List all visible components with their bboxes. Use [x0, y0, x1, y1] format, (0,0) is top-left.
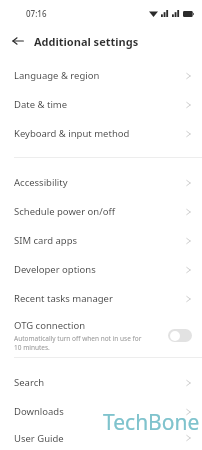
- button[interactable]: OTG connection: [0, 313, 202, 357]
- button[interactable]: Date & time: [0, 90, 202, 119]
- staticText: TechBone: [103, 408, 200, 437]
- staticText: Recent tasks manager: [14, 292, 185, 305]
- staticText: Schedule power on/off: [14, 205, 185, 218]
- button[interactable]: Search: [0, 368, 202, 397]
- staticText: User Guide: [14, 432, 185, 445]
- staticText: Downloads: [14, 405, 185, 418]
- button[interactable]: Developer options: [0, 255, 202, 284]
- staticText: Developer options: [14, 263, 185, 276]
- button[interactable]: Schedule power on/off: [0, 197, 202, 226]
- button[interactable]: Accessibility: [0, 168, 202, 197]
- staticText: Automatically turn off when not in use f…: [14, 334, 149, 352]
- button[interactable]: Downloads: [0, 397, 202, 426]
- button[interactable]: OTG connection toggle: [168, 329, 192, 342]
- staticText: 07:16: [26, 8, 47, 19]
- button[interactable]: SIM card apps: [0, 226, 202, 255]
- staticText: Additional settings: [34, 34, 139, 49]
- staticText: OTG connection: [14, 319, 86, 332]
- staticText: Search: [14, 376, 185, 389]
- button[interactable]: Recent tasks manager: [0, 284, 202, 313]
- staticText: SIM card apps: [14, 234, 185, 247]
- staticText: Keyboard & input method: [14, 127, 185, 140]
- button[interactable]: User Guide: [0, 426, 202, 450]
- staticText: Accessibility: [14, 176, 185, 189]
- button[interactable]: Language & region: [0, 61, 202, 90]
- staticText: Date & time: [14, 98, 185, 111]
- button[interactable]: Keyboard & input method: [0, 119, 202, 148]
- button[interactable]: Back: [8, 31, 28, 51]
- staticText: Language & region: [14, 69, 185, 82]
